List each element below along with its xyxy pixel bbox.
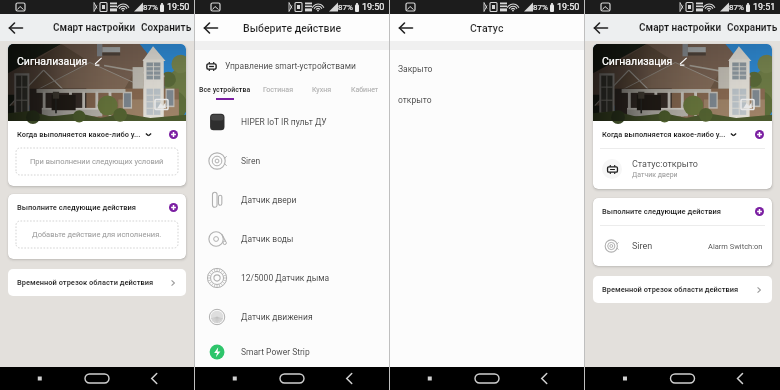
staticText: Статус [470,22,504,34]
button[interactable]: Закрыто [390,53,584,84]
staticText: 87% [729,3,744,12]
staticText: Управление smart-устройствами [225,61,356,71]
staticText: Сохранить [727,22,778,34]
staticText: Сигнализация [602,55,673,67]
other: Edit [679,57,688,66]
button[interactable]: Add [169,203,178,212]
staticText: HIPER IoT IR пульт ДУ [241,117,327,127]
staticText: Кабинет [351,86,379,94]
button[interactable]: Siren [593,226,772,266]
other: Edit [94,57,103,66]
staticText: Когда выполняется какое-либо у... [602,130,726,139]
staticText: 19:50 [362,2,385,13]
staticText: Все устройства [199,86,251,94]
staticText: Siren [632,241,653,252]
staticText: Временной отрезок области действия [17,278,154,287]
staticText: 12/5000 Датчик дыма [241,273,330,283]
button[interactable]: Back [397,19,415,37]
button[interactable]: 12/5000 Датчик дыма [195,258,389,297]
other: Back [397,19,415,37]
button[interactable]: Все устройства [195,82,254,102]
staticText: 19:50 [167,2,190,13]
staticText: Датчик двери [241,195,297,205]
button[interactable]: Статус:открыто [593,149,772,189]
button[interactable]: Back [592,19,610,37]
staticText: Смарт настройки [639,22,722,34]
staticText: Гостиная [263,86,293,94]
other: Back [7,19,25,37]
button[interactable]: Back [202,19,220,37]
staticText: 19:50 [557,2,580,13]
button[interactable]: Add [755,130,764,139]
button[interactable]: Сохранить [141,22,192,34]
staticText: 87% [143,3,158,12]
staticText: Датчик двери [632,171,678,179]
button[interactable]: Датчик воды [195,219,389,258]
button[interactable]: Кухня [302,82,341,102]
staticText: 19:51 [753,2,776,13]
staticText: Выберите действие [243,22,342,34]
other: Back [202,19,220,37]
staticText: Добавьте действие для исполнения. [32,230,162,239]
staticText: Датчик движения [241,312,313,322]
button[interactable]: Сохранить [727,22,778,34]
button[interactable]: Временной отрезок области действия [8,269,186,296]
staticText: Alarm Switch:on [708,242,763,251]
button[interactable]: Smart Power Strip [195,336,389,367]
staticText: Выполните следующие действия [602,207,721,216]
button[interactable]: Add [755,207,764,216]
staticText: Smart Power Strip [241,347,310,357]
staticText: Статус:открыто [632,159,698,170]
staticText: Кухня [312,86,332,94]
staticText: Выполните следующие действия [17,203,136,212]
button[interactable]: Add [169,130,178,139]
button[interactable]: HIPER IoT IR пульт ДУ [195,102,389,141]
button[interactable]: Датчик двери [195,180,389,219]
staticText: Смарт настройки [53,22,136,34]
button[interactable]: Кабинет [341,82,389,102]
staticText: Закрыто [398,64,433,74]
button[interactable]: Гостиная [254,82,302,102]
staticText: 87% [338,3,353,12]
staticText: При выполнении следующих условий [30,157,164,166]
button[interactable]: Edit [679,57,688,66]
button[interactable]: открыто [390,84,584,115]
staticText: Когда выполняется какое-либо у... [17,130,141,139]
staticText: Siren [241,156,261,166]
other: Change image [741,98,754,111]
button[interactable]: Edit [94,57,103,66]
other: Back [592,19,610,37]
staticText: Сигнализация [17,55,88,67]
button[interactable]: Управление smart-устройствами [195,54,389,78]
button[interactable]: Датчик движения [195,297,389,336]
button[interactable]: Временной отрезок области действия [593,276,772,303]
other: Change image [155,98,168,111]
staticText: Временной отрезок области действия [602,285,739,294]
staticText: 87% [533,3,548,12]
button[interactable]: Back [7,19,25,37]
staticText: Датчик воды [241,234,294,244]
button[interactable]: Siren [195,141,389,180]
staticText: открыто [398,95,432,105]
staticText: Сохранить [141,22,192,34]
